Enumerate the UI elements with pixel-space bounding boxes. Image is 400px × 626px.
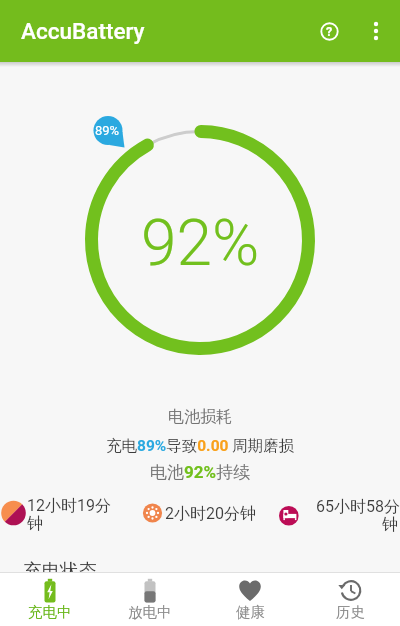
button[interactable]: 健康 (200, 573, 300, 626)
staticText: AccuBattery (21, 18, 145, 44)
button[interactable]: 放电中 (100, 573, 200, 626)
button[interactable]: 历史 (300, 573, 400, 626)
button[interactable] (356, 11, 396, 51)
staticText: 钟 (382, 515, 398, 535)
staticText: 充电中 (28, 603, 72, 621)
staticText: 12小时19分 钟 (27, 496, 111, 534)
button[interactable]: 充电中 (0, 573, 100, 626)
staticText: 2小时20分钟 (165, 504, 256, 524)
staticText: 放电中 (128, 603, 172, 621)
staticText: 电池损耗 (168, 407, 232, 427)
staticText: 电池92%持续 (150, 462, 251, 483)
staticText: 65小时58分 (316, 497, 400, 517)
staticText: ? (326, 24, 333, 39)
staticText: 健康 (236, 603, 265, 621)
staticText: 充电89%导致0.00 周期磨损 (106, 436, 295, 456)
staticText: 89% (95, 123, 120, 138)
staticText: 充电状态 (23, 559, 97, 582)
staticText: 历史 (336, 603, 365, 621)
staticText: 92% (141, 206, 260, 280)
button[interactable]: ? (309, 11, 349, 51)
